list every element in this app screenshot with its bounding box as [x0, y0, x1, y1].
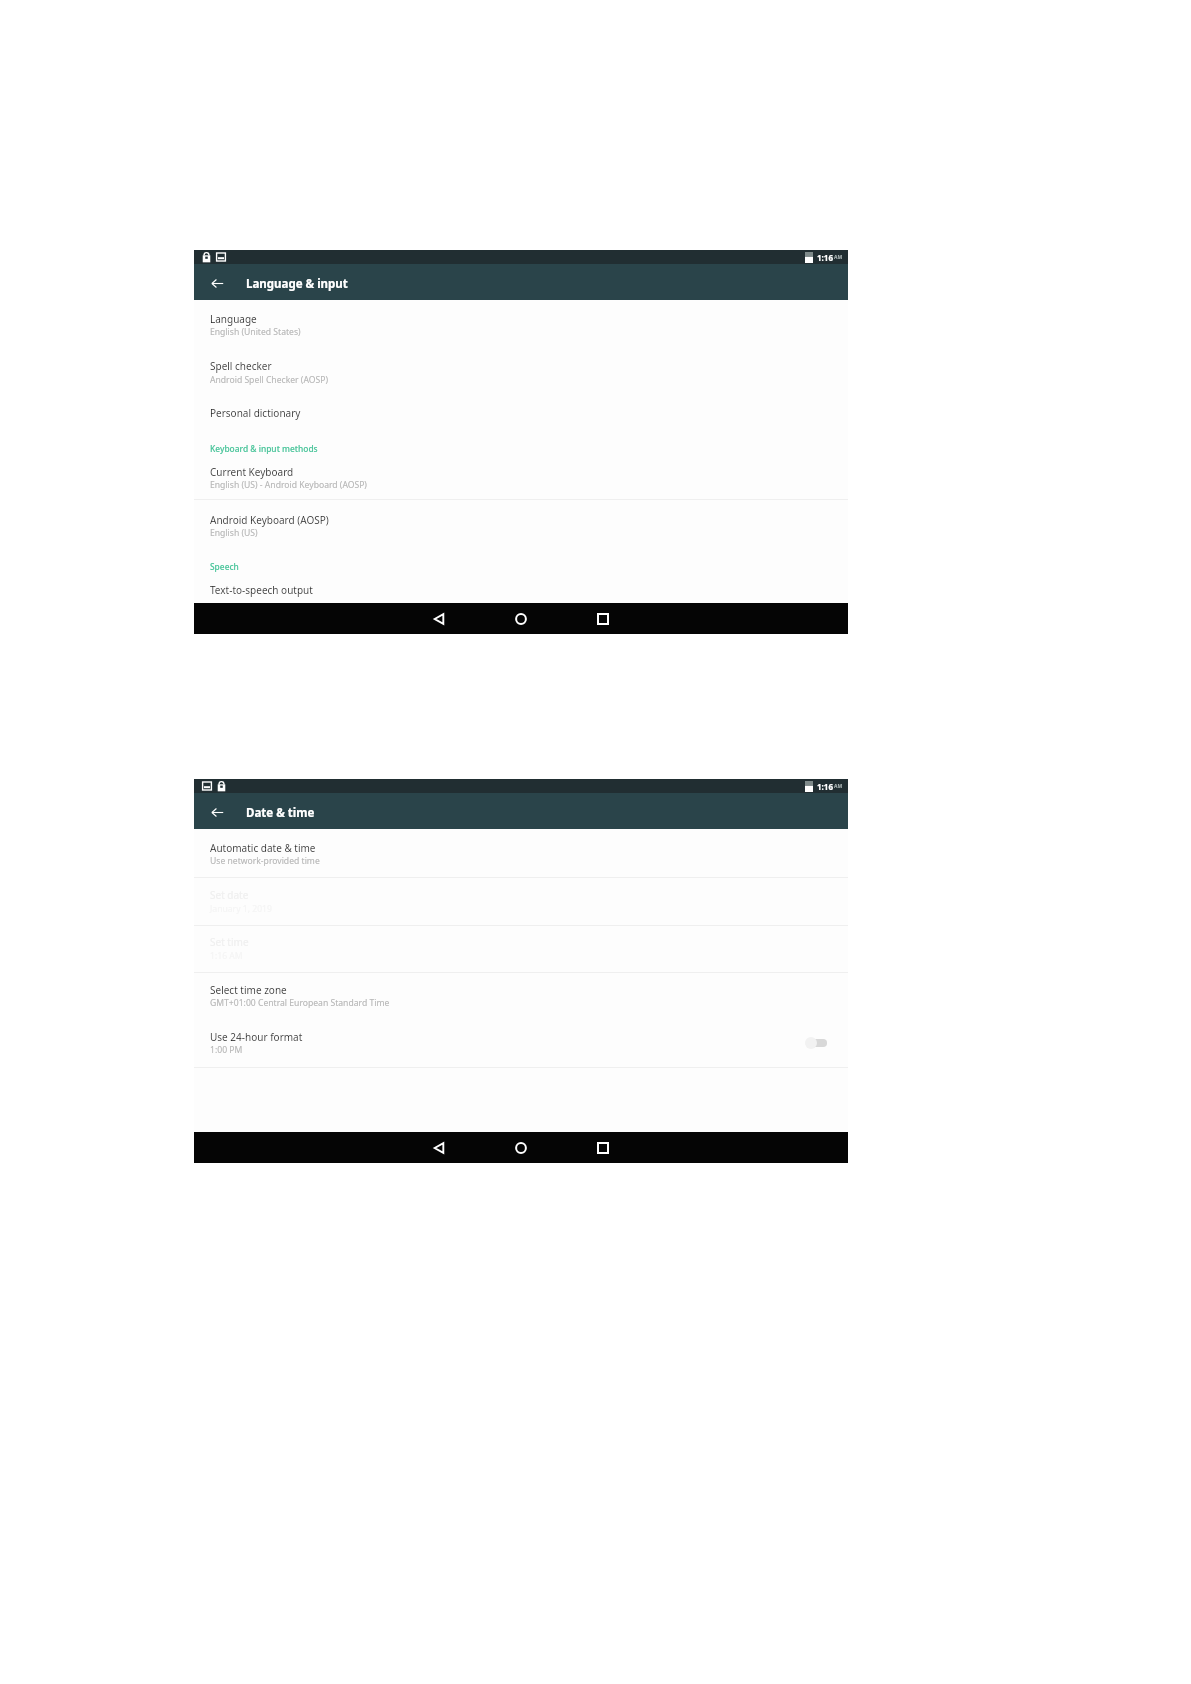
staticText: AM [834, 783, 843, 790]
button[interactable]: Text-to-speech output [194, 578, 848, 602]
staticText: GMT+01:00 Central European Standard Time [210, 997, 390, 1009]
button[interactable]: Navigate up [194, 264, 241, 300]
staticText: Select time zone [210, 983, 287, 997]
button[interactable]: Use 24-hour format [194, 1025, 848, 1062]
staticText: Android Spell Checker (AOSP) [210, 374, 328, 386]
button[interactable]: Use 24-hour format [804, 1035, 832, 1051]
staticText: Set time [210, 935, 249, 949]
button[interactable]: Language [194, 307, 848, 344]
button[interactable]: Personal dictionary [194, 401, 848, 425]
button[interactable]: Recent apps [581, 603, 625, 634]
staticText: Set date [210, 888, 249, 902]
button[interactable]: Recent apps [581, 1132, 625, 1163]
button[interactable]: Spell checker [194, 354, 848, 392]
button[interactable]: Current Keyboard [194, 460, 848, 497]
button[interactable]: Back [417, 1132, 461, 1163]
button[interactable]: Navigate up [194, 793, 241, 829]
staticText: 1:16 [817, 252, 833, 263]
staticText: AM [834, 254, 843, 261]
staticText: Use 24-hour format [210, 1030, 303, 1044]
staticText: English (US) [210, 527, 258, 539]
staticText: 1:00 PM [210, 1044, 243, 1056]
staticText: Automatic date & time [210, 841, 316, 855]
staticText: Keyboard & input methods [210, 443, 318, 454]
staticText: Spell checker [210, 359, 272, 373]
staticText: English (US) - Android Keyboard (AOSP) [210, 479, 367, 491]
staticText: Text-to-speech output [210, 583, 313, 597]
staticText: Android Keyboard (AOSP) [210, 513, 329, 527]
staticText: Language [210, 312, 257, 326]
staticText: Personal dictionary [210, 406, 301, 420]
button[interactable]: Automatic date & time [194, 836, 848, 873]
staticText: 1:16 [817, 781, 833, 792]
staticText: Use network-provided time [210, 855, 320, 867]
button[interactable]: Home [499, 603, 543, 634]
staticText: Speech [210, 561, 239, 572]
button[interactable]: Back [417, 603, 461, 634]
button[interactable]: Home [499, 1132, 543, 1163]
staticText: Current Keyboard [210, 465, 294, 479]
staticText: English (United States) [210, 326, 301, 338]
button[interactable]: Android Keyboard (AOSP) [194, 508, 848, 545]
staticText: Language & input [246, 276, 348, 292]
staticText: Date & time [246, 805, 315, 821]
button[interactable]: Select time zone [194, 978, 848, 1015]
